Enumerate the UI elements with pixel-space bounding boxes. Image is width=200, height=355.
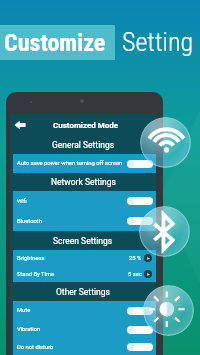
staticText: Customize — [4, 29, 106, 57]
button[interactable]: Brightness — [13, 250, 156, 266]
staticText: Screen Settings — [53, 236, 113, 246]
button[interactable]: Toggle — [127, 217, 153, 225]
staticText: Customized Mode — [53, 121, 119, 130]
button[interactable]: Vibration — [13, 320, 156, 339]
button[interactable]: Bluetooth — [13, 211, 156, 231]
staticText: Other Settings — [56, 287, 110, 297]
button[interactable]: Wi-Fi — [140, 117, 191, 168]
button[interactable]: Mute — [13, 301, 156, 320]
staticText: Wifi — [17, 198, 27, 205]
staticText: 25 % — [129, 255, 142, 262]
staticText: Setting — [122, 27, 194, 57]
staticText: Mute — [17, 307, 31, 314]
button[interactable]: Brightness — [143, 285, 194, 336]
staticText: Bluetooth — [17, 218, 42, 225]
button[interactable]: Back — [12, 117, 28, 133]
button[interactable]: Auto save power when turning off screen — [13, 154, 156, 173]
button[interactable]: Toggle — [127, 326, 153, 334]
button[interactable]: Toggle — [127, 343, 153, 351]
button[interactable]: Toggle — [127, 197, 153, 205]
button[interactable]: Stand By Time — [13, 266, 156, 282]
staticText: Network Settings — [51, 177, 116, 187]
staticText: Vibration — [17, 326, 41, 333]
staticText: Brightness — [17, 255, 45, 262]
button[interactable]: Wifi — [13, 191, 156, 211]
button[interactable]: Bluetooth — [139, 206, 190, 257]
button[interactable]: Do not disturb — [13, 339, 156, 355]
button[interactable]: Toggle — [127, 307, 153, 315]
staticText: 5 sec — [128, 271, 142, 278]
staticText: General Settings — [52, 140, 115, 150]
staticText: Stand By Time — [17, 271, 55, 278]
staticText: Do not disturb — [17, 344, 54, 351]
button[interactable]: Toggle — [127, 160, 153, 168]
staticText: Auto save power when turning off screen — [17, 160, 123, 167]
